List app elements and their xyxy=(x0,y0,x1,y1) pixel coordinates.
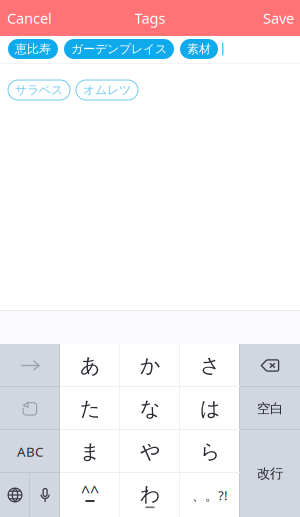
button[interactable]: Dictate xyxy=(30,473,60,517)
staticText: あ xyxy=(80,353,100,378)
button[interactable]: か xyxy=(120,344,180,387)
button[interactable]: オムレツ xyxy=(76,80,138,100)
staticText: 恵比寿 xyxy=(15,42,51,56)
staticText: な xyxy=(140,396,160,421)
button[interactable]: ^^ xyxy=(60,473,120,517)
button[interactable]: な xyxy=(120,387,180,430)
staticText: た xyxy=(80,396,100,421)
button[interactable]: わ xyxy=(120,473,180,517)
button[interactable]: は xyxy=(180,387,240,430)
staticText: さ xyxy=(200,353,220,378)
staticText: 改行 xyxy=(257,465,283,482)
staticText: Save xyxy=(263,8,294,28)
staticText: ま xyxy=(80,439,100,464)
button[interactable]: Switch keyboard xyxy=(0,473,30,517)
button[interactable]: ま xyxy=(60,430,120,473)
button[interactable]: 改行 xyxy=(240,430,300,517)
button[interactable]: 、。?! xyxy=(180,473,240,517)
staticText: ら xyxy=(200,439,220,464)
button[interactable]: ABC xyxy=(0,430,60,473)
staticText: わ xyxy=(140,482,160,506)
staticText: ABC xyxy=(17,443,43,460)
button[interactable]: や xyxy=(120,430,180,473)
button[interactable]: サラベス xyxy=(8,80,70,100)
staticText: Tags xyxy=(134,8,165,28)
button[interactable]: Undo xyxy=(0,387,60,430)
button[interactable]: た xyxy=(60,387,120,430)
button[interactable]: 空白 xyxy=(240,387,300,430)
staticText: サラベス xyxy=(15,83,63,97)
staticText: オムレツ xyxy=(83,83,131,97)
button[interactable]: あ xyxy=(60,344,120,387)
staticText: ガーデンプレイス xyxy=(71,42,167,56)
staticText: は xyxy=(200,396,220,421)
button[interactable]: さ xyxy=(180,344,240,387)
staticText: Cancel xyxy=(7,8,52,28)
button[interactable]: 素材 xyxy=(180,39,218,59)
button[interactable]: Next xyxy=(0,344,60,387)
staticText: や xyxy=(140,439,160,464)
button[interactable]: ガーデンプレイス xyxy=(64,39,174,59)
button[interactable]: 恵比寿 xyxy=(8,39,58,59)
staticText: 素材 xyxy=(187,42,211,56)
button[interactable]: Cancel xyxy=(0,0,63,36)
staticText: ^^ xyxy=(81,480,99,502)
button[interactable]: Save xyxy=(252,0,300,36)
button[interactable]: Delete xyxy=(240,344,300,387)
button[interactable]: ら xyxy=(180,430,240,473)
staticText: か xyxy=(140,353,160,378)
staticText: 、。?! xyxy=(192,486,228,504)
staticText: 空白 xyxy=(257,400,283,417)
